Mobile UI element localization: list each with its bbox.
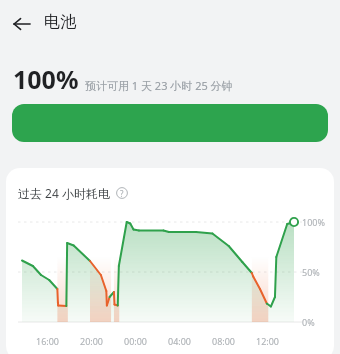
staticText: 50%	[302, 266, 320, 278]
staticText: 12:00	[256, 335, 280, 347]
staticText: ?	[120, 188, 124, 199]
button[interactable]: Battery level 100 percent	[12, 104, 328, 142]
staticText: 电池	[44, 12, 76, 32]
staticText: 16:00	[36, 335, 60, 347]
staticText: 00:00	[124, 335, 148, 347]
other: Help	[116, 187, 128, 199]
staticText: 100%	[302, 216, 325, 228]
button[interactable]: Back	[6, 8, 38, 40]
staticText: 0%	[302, 316, 315, 328]
staticText: 20:00	[80, 335, 104, 347]
button[interactable]: 过去 24 小时耗电	[18, 185, 128, 201]
staticText: 08:00	[212, 335, 236, 347]
staticText: 过去 24 小时耗电	[18, 185, 110, 201]
staticText: 预计可用 1 天 23 小时 25 分钟	[85, 78, 233, 93]
staticText: 04:00	[168, 335, 192, 347]
staticText: 100%	[13, 62, 79, 96]
